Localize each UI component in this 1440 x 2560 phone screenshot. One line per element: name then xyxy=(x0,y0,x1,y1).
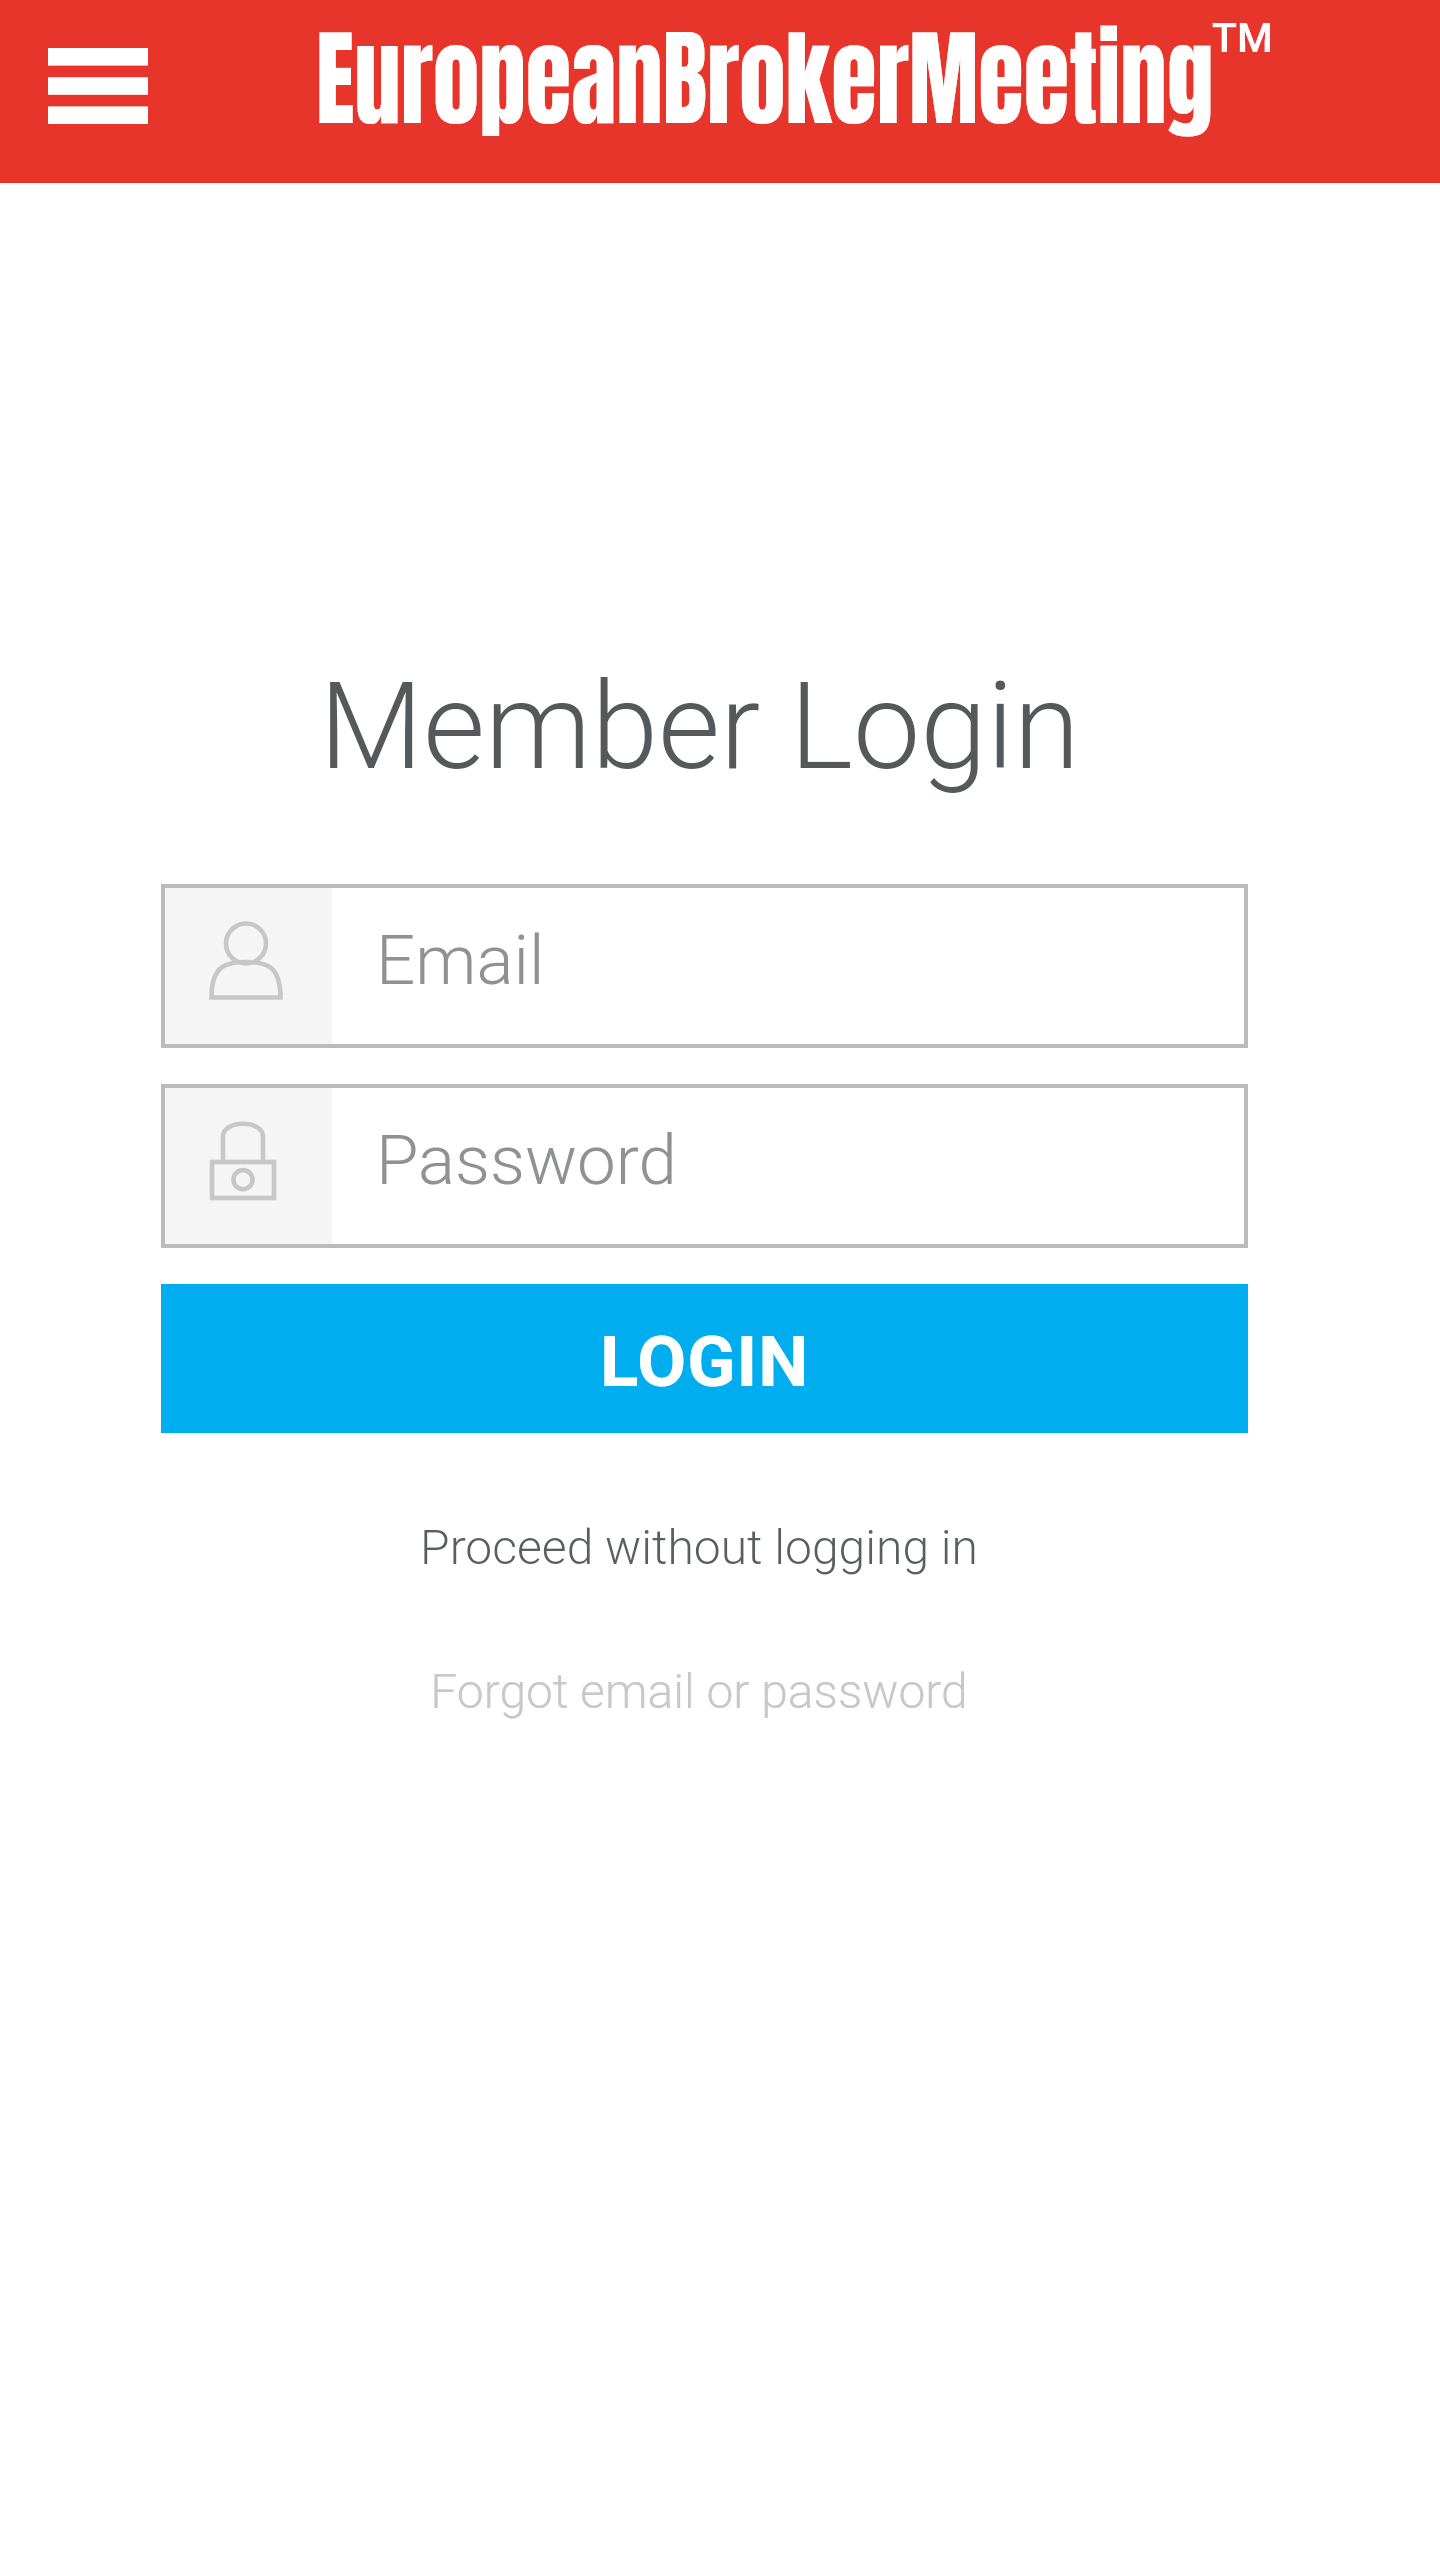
staticText: TM xyxy=(1212,14,1273,62)
button[interactable]: Password xyxy=(161,1084,1248,1248)
button[interactable]: Proceed without logging in xyxy=(396,1503,1002,1591)
staticText: LOGIN xyxy=(600,1320,810,1403)
button[interactable]: Email xyxy=(161,884,1248,1048)
button[interactable]: Forgot email or password xyxy=(406,1647,992,1735)
staticText: EuropeanBrokerMeeting xyxy=(316,0,1213,157)
staticText: Forgot email or password xyxy=(430,1663,968,1719)
staticText: Proceed without logging in xyxy=(420,1519,978,1575)
staticText: Password xyxy=(376,1120,677,1201)
staticText: Email xyxy=(376,920,545,1001)
button[interactable]: LOGIN xyxy=(161,1284,1248,1433)
staticText: Member Login xyxy=(319,657,1080,798)
button[interactable]: Open navigation menu xyxy=(20,22,176,150)
